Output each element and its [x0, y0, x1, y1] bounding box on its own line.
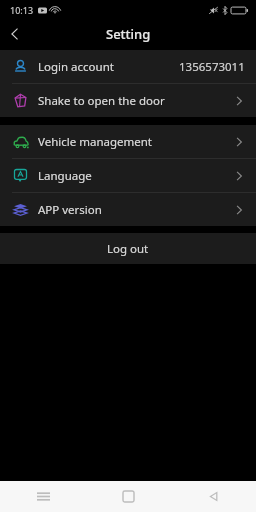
button[interactable]: APP version: [0, 193, 256, 226]
staticText: 10:13: [10, 4, 34, 16]
button[interactable]: Vehicle management: [0, 125, 256, 158]
staticText: Log out: [107, 241, 149, 257]
button[interactable]: Home: [86, 481, 171, 512]
button[interactable]: Log out: [0, 233, 256, 264]
button[interactable]: Recent apps: [0, 481, 86, 512]
staticText: Language: [38, 168, 92, 184]
button[interactable]: Shake to open the door: [0, 84, 256, 117]
button[interactable]: Back: [171, 481, 256, 512]
button[interactable]: Back: [0, 20, 30, 48]
staticText: APP version: [38, 202, 102, 218]
staticText: 1356573011: [179, 59, 245, 75]
button[interactable]: Login account: [0, 50, 256, 83]
staticText: Vehicle management: [38, 134, 153, 150]
staticText: Setting: [106, 25, 151, 43]
staticText: Login account: [38, 59, 114, 75]
staticText: Shake to open the door: [38, 93, 165, 109]
button[interactable]: Language: [0, 159, 256, 192]
